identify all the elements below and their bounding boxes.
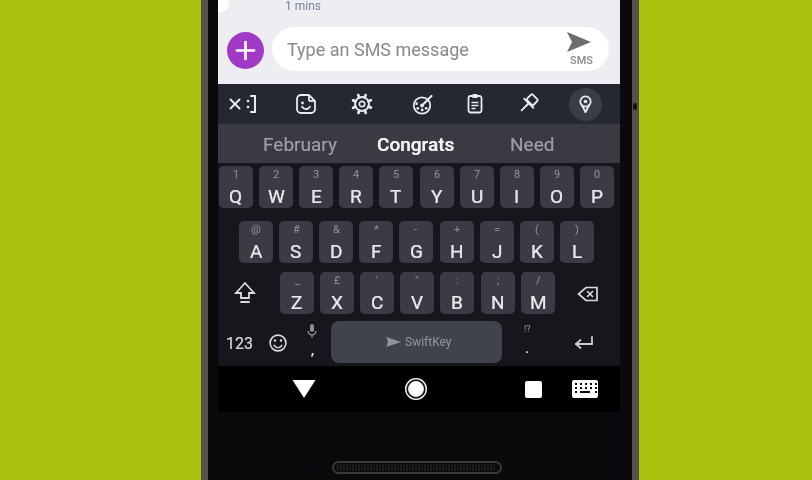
staticText: E (311, 185, 322, 207)
staticText: SwiftKey (405, 335, 452, 349)
staticText: @ (251, 223, 261, 236)
button[interactable]: 5 (379, 166, 413, 208)
staticText: 0 (594, 168, 601, 181)
staticText: SMS (570, 54, 593, 67)
button[interactable]: 1 (219, 166, 253, 208)
staticText: F (371, 240, 382, 262)
staticText: February (263, 133, 337, 155)
button[interactable]: SwiftKey (331, 321, 502, 363)
staticText: M (530, 291, 547, 313)
staticText: D (330, 240, 343, 262)
staticText: O (550, 185, 564, 207)
staticText: !? (524, 324, 531, 335)
button[interactable] (402, 375, 430, 403)
staticText: U (471, 185, 484, 207)
staticText: 3 (313, 168, 320, 181)
staticText: 2 (273, 168, 280, 181)
button[interactable]: - (399, 221, 433, 263)
staticText: 8 (514, 168, 521, 181)
button[interactable]: = (480, 221, 514, 263)
button[interactable]: Congrats (366, 124, 466, 163)
button[interactable]: 2 (259, 166, 293, 208)
button[interactable]: _ (280, 272, 314, 314)
button[interactable] (568, 275, 608, 313)
staticText: 6 (434, 168, 441, 181)
staticText: 7 (474, 168, 481, 181)
button[interactable] (227, 32, 264, 69)
staticText: T (390, 185, 402, 207)
button[interactable]: & (319, 221, 353, 263)
button[interactable]: !? (515, 321, 539, 363)
staticText: S (290, 240, 302, 262)
button[interactable] (291, 89, 321, 119)
staticText: , (311, 341, 314, 359)
button[interactable]: 4 (339, 166, 373, 208)
staticText: H (450, 240, 464, 262)
button[interactable]: February (250, 124, 350, 163)
staticText: 5 (393, 168, 400, 181)
button[interactable]: ( (520, 221, 554, 263)
button[interactable]: ; (481, 272, 515, 314)
staticText: K (531, 240, 543, 262)
staticText: / (536, 274, 541, 287)
button[interactable] (570, 375, 600, 403)
staticText: G (410, 240, 423, 262)
button[interactable] (408, 89, 438, 119)
button[interactable] (513, 89, 543, 119)
button[interactable] (238, 89, 268, 119)
button[interactable]: / (521, 272, 555, 314)
button[interactable]: £ (320, 272, 354, 314)
staticText: J (492, 240, 503, 262)
staticText: * (374, 223, 379, 236)
button[interactable] (519, 375, 547, 403)
button[interactable] (564, 321, 604, 363)
button[interactable] (259, 323, 297, 363)
button[interactable]: @ (239, 221, 273, 263)
staticText: X (331, 291, 343, 313)
button[interactable]: 0 (580, 166, 614, 208)
button[interactable]: # (279, 221, 313, 263)
staticText: A (250, 240, 263, 262)
staticText: Congrats (377, 133, 455, 155)
button[interactable]: * (359, 221, 393, 263)
staticText: I (514, 185, 520, 207)
staticText: & (333, 223, 340, 236)
staticText: 9 (554, 168, 561, 181)
staticText: ' (376, 274, 378, 287)
staticText: L (572, 240, 583, 262)
staticText: £ (334, 274, 341, 287)
button[interactable] (300, 321, 324, 365)
staticText: P (591, 185, 603, 207)
button[interactable]: 6 (420, 166, 454, 208)
button[interactable] (347, 89, 377, 119)
staticText: ( (535, 223, 539, 236)
button[interactable]: 7 (460, 166, 494, 208)
button[interactable]: 3 (299, 166, 333, 208)
button[interactable] (290, 375, 318, 403)
staticText: W (268, 185, 285, 207)
button[interactable]: " (400, 272, 434, 314)
button[interactable] (569, 88, 602, 121)
button[interactable] (226, 275, 264, 313)
button[interactable]: 8 (500, 166, 534, 208)
staticText: Need (510, 133, 555, 155)
button[interactable]: : (440, 272, 474, 314)
staticText: " (415, 274, 419, 287)
staticText: ; (497, 274, 500, 287)
button[interactable]: 123 (220, 323, 258, 363)
button[interactable]: Type an SMS message (272, 27, 609, 71)
staticText: V (411, 291, 424, 313)
staticText: N (491, 291, 505, 313)
button[interactable]: + (440, 221, 474, 263)
button[interactable]: 9 (540, 166, 574, 208)
staticText: Q (229, 185, 243, 207)
button[interactable] (460, 89, 490, 119)
staticText: ) (575, 223, 579, 236)
button[interactable] (220, 89, 250, 119)
button[interactable]: Need (482, 124, 582, 163)
button[interactable]: ) (560, 221, 594, 263)
staticText: - (414, 223, 418, 236)
staticText: + (454, 223, 461, 236)
button[interactable]: ' (360, 272, 394, 314)
button[interactable]: , (300, 337, 324, 363)
